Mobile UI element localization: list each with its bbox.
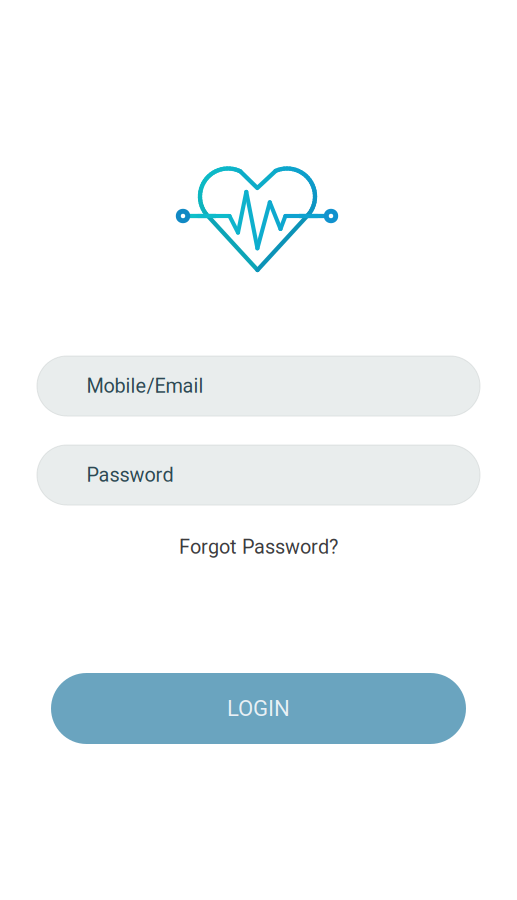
button[interactable]: Mobile/Email xyxy=(37,356,480,416)
staticText: Forgot Password? xyxy=(179,535,338,559)
button[interactable]: LOGIN xyxy=(51,673,466,744)
staticText: LOGIN xyxy=(227,695,290,721)
staticText: Password xyxy=(86,463,173,487)
button[interactable]: Forgot Password? xyxy=(169,534,348,560)
button[interactable]: Password xyxy=(37,445,480,505)
staticText: Mobile/Email xyxy=(86,374,203,398)
